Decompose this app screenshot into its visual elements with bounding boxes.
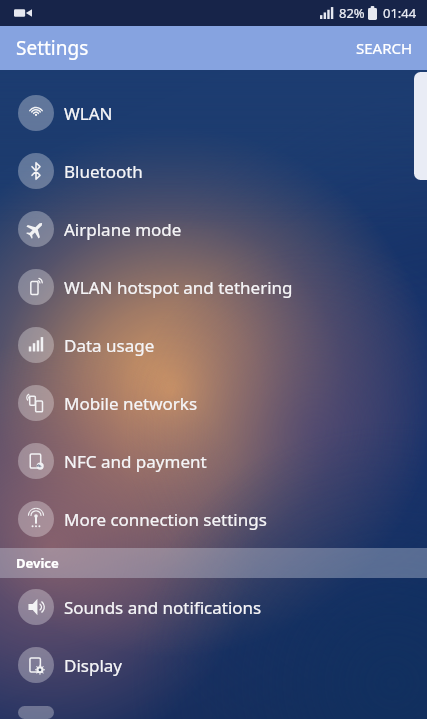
button[interactable]: Display <box>0 636 427 694</box>
button[interactable]: WLAN <box>0 84 427 142</box>
staticText: Mobile networks <box>64 392 198 415</box>
staticText: Settings <box>16 35 89 61</box>
button[interactable] <box>0 694 427 719</box>
staticText: Device <box>16 554 59 572</box>
button[interactable]: Sounds and notifications <box>0 578 427 636</box>
staticText: More connection settings <box>64 508 267 531</box>
button[interactable]: WLAN hotspot and tethering <box>0 258 427 316</box>
staticText: Data usage <box>64 334 155 357</box>
button[interactable]: SEARCH <box>342 30 427 66</box>
button[interactable]: NFC and payment <box>0 432 427 490</box>
staticText: SEARCH <box>356 38 413 58</box>
staticText: Airplane mode <box>64 218 182 241</box>
staticText: Bluetooth <box>64 160 143 183</box>
staticText: Display <box>64 654 122 677</box>
staticText: 82% <box>339 4 365 22</box>
button[interactable]: More connection settings <box>0 490 427 548</box>
button[interactable]: Airplane mode <box>0 200 427 258</box>
staticText: Sounds and notifications <box>64 596 262 619</box>
button[interactable]: Data usage <box>0 316 427 374</box>
staticText: 01:44 <box>383 4 417 22</box>
staticText: WLAN hotspot and tethering <box>64 276 293 299</box>
button[interactable]: Mobile networks <box>0 374 427 432</box>
button[interactable]: Bluetooth <box>0 142 427 200</box>
staticText: NFC and payment <box>64 450 207 473</box>
staticText: WLAN <box>64 102 113 125</box>
